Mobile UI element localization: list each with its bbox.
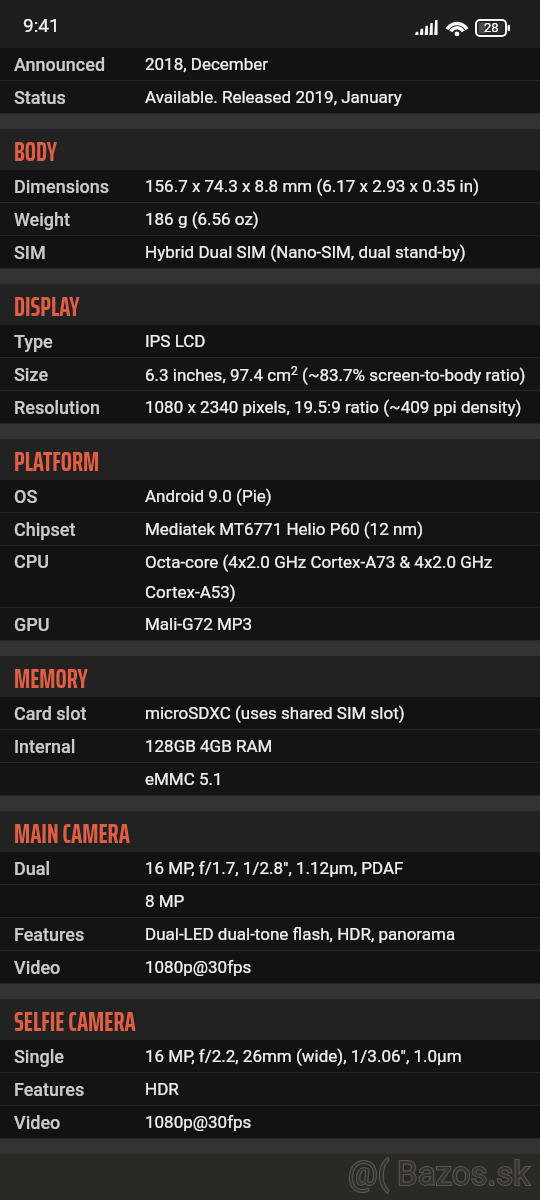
staticText: PLATFORM xyxy=(14,441,100,480)
button[interactable]: BODY xyxy=(0,129,540,170)
staticText: GPU xyxy=(14,614,50,635)
staticText: IPS LCD xyxy=(145,331,206,351)
button[interactable]: Chipset xyxy=(0,513,540,546)
button[interactable]: CPU xyxy=(0,546,540,608)
button[interactable]: Features xyxy=(0,918,540,951)
staticText: Hybrid Dual SIM (Nano-SIM, dual stand-by… xyxy=(145,242,466,262)
button[interactable]: Video xyxy=(0,1106,540,1139)
staticText: 1080p@30fps xyxy=(145,1112,252,1132)
staticText: Size xyxy=(14,364,49,385)
button[interactable]: MEMORY xyxy=(0,656,540,697)
button[interactable]: Weight xyxy=(0,203,540,236)
staticText: HDR xyxy=(145,1079,179,1099)
staticText: Mali-G72 MP3 xyxy=(145,614,253,634)
staticText: MAIN CAMERA xyxy=(14,813,130,852)
button[interactable]: SELFIE CAMERA xyxy=(0,999,540,1040)
staticText: Card slot xyxy=(14,703,87,724)
other: Wi-Fi xyxy=(445,19,469,35)
staticText: @( Bazos.sk xyxy=(348,1154,531,1193)
staticText: 156.7 x 74.3 x 8.8 mm (6.17 x 2.93 x 0.3… xyxy=(145,176,480,196)
staticText: 2018, December xyxy=(145,54,269,74)
staticText: Dimensions xyxy=(14,176,110,197)
staticText: 28 xyxy=(484,20,499,35)
button[interactable]: Video xyxy=(0,951,540,984)
staticText: Dual xyxy=(14,858,51,879)
button[interactable]: Resolution xyxy=(0,391,540,424)
staticText: Chipset xyxy=(14,519,76,540)
staticText: CPU xyxy=(14,551,50,572)
staticText: Weight xyxy=(14,209,71,230)
button[interactable]: GPU xyxy=(0,608,540,641)
staticText: SIM xyxy=(14,242,46,263)
staticText: 1080p@30fps xyxy=(145,957,252,977)
button[interactable]: Single xyxy=(0,1040,540,1073)
staticText: SELFIE CAMERA xyxy=(14,1001,136,1040)
button[interactable]: 8 MP xyxy=(0,885,540,918)
button[interactable]: Features xyxy=(0,1073,540,1106)
staticText: 6.3 inches, 97.4 cm2 (~83.7% screen-to-b… xyxy=(145,364,526,385)
staticText: Available. Released 2019, January xyxy=(145,87,402,107)
staticText: MEMORY xyxy=(14,658,88,697)
button[interactable]: Size xyxy=(0,358,540,391)
staticText: Type xyxy=(14,331,53,352)
button[interactable]: Card slot xyxy=(0,697,540,730)
staticText: Video xyxy=(14,957,61,978)
staticText: Features xyxy=(14,924,85,945)
button[interactable]: OS xyxy=(0,480,540,513)
staticText: @( Bazos.sk xyxy=(348,1154,531,1193)
button[interactable]: Internal xyxy=(0,730,540,763)
staticText: Android 9.0 (Pie) xyxy=(145,486,272,506)
staticText: eMMC 5.1 xyxy=(145,769,223,789)
other: Mobile signal xyxy=(415,20,439,35)
button[interactable]: Announced xyxy=(0,48,540,81)
staticText: Announced xyxy=(14,54,106,75)
button[interactable]: SIM xyxy=(0,236,540,269)
staticText: 186 g (6.56 oz) xyxy=(145,209,259,229)
button[interactable]: Type xyxy=(0,325,540,358)
staticText: 128GB 4GB RAM xyxy=(145,736,273,756)
button[interactable]: Dual xyxy=(0,852,540,885)
staticText: 1080 x 2340 pixels, 19.5:9 ratio (~409 p… xyxy=(145,397,522,417)
staticText: 8 MP xyxy=(145,891,185,911)
button[interactable]: MAIN CAMERA xyxy=(0,811,540,852)
button[interactable]: eMMC 5.1 xyxy=(0,763,540,796)
staticText: Video xyxy=(14,1112,61,1133)
button[interactable]: Dimensions xyxy=(0,170,540,203)
staticText: 16 MP, f/2.2, 26mm (wide), 1/3.06", 1.0µ… xyxy=(145,1046,462,1066)
button[interactable]: Status xyxy=(0,81,540,114)
staticText: Features xyxy=(14,1079,85,1100)
staticText: 16 MP, f/1.7, 1/2.8", 1.12µm, PDAF xyxy=(145,858,404,878)
other: Battery 28 percent xyxy=(476,20,511,36)
button[interactable]: PLATFORM xyxy=(0,439,540,480)
staticText: Internal xyxy=(14,736,76,757)
staticText: OS xyxy=(14,486,38,507)
staticText: Mediatek MT6771 Helio P60 (12 nm) xyxy=(145,519,424,539)
staticText: DISPLAY xyxy=(14,286,80,325)
button[interactable]: DISPLAY xyxy=(0,284,540,325)
staticText: Status xyxy=(14,87,66,108)
staticText: microSDXC (uses shared SIM slot) xyxy=(145,703,405,723)
staticText: BODY xyxy=(14,131,57,170)
staticText: Single xyxy=(14,1046,64,1067)
staticText: 9:41 xyxy=(23,14,60,36)
staticText: Dual-LED dual-tone flash, HDR, panorama xyxy=(145,924,456,944)
staticText: Resolution xyxy=(14,397,100,418)
staticText: Cortex-A53) xyxy=(145,582,236,602)
staticText: Octa-core (4x2.0 GHz Cortex-A73 & 4x2.0 … xyxy=(145,552,493,572)
